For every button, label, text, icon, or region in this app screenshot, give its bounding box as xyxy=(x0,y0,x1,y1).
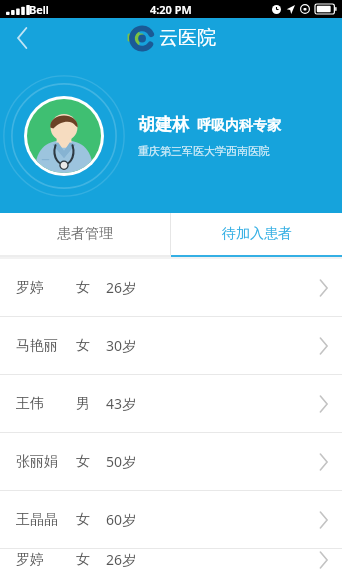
button[interactable]: 王伟 xyxy=(0,375,342,432)
staticText: 男 xyxy=(76,395,90,413)
button[interactable]: 马艳丽 xyxy=(0,317,342,374)
button[interactable]: 张丽娟 xyxy=(0,433,342,490)
button[interactable]: 罗婷 xyxy=(0,259,342,316)
staticText: 王晶晶 xyxy=(16,511,58,529)
staticText: 重庆第三军医大学西南医院 xyxy=(138,144,270,158)
button[interactable]: Doctor avatar xyxy=(27,99,101,173)
button[interactable]: 待加入患者 xyxy=(171,213,342,255)
staticText: 50岁 xyxy=(106,452,137,471)
staticText: 女 xyxy=(76,279,90,297)
button[interactable]: 罗婷 xyxy=(0,549,342,570)
staticText: 4:20 PM xyxy=(150,2,192,17)
staticText: 女 xyxy=(76,511,90,529)
staticText: 呼吸内科专家 xyxy=(197,117,281,135)
staticText: 60岁 xyxy=(106,510,137,529)
staticText: 女 xyxy=(76,453,90,471)
button[interactable]: 患者管理 xyxy=(0,213,170,255)
staticText: 待加入患者 xyxy=(222,225,292,243)
staticText: Bell xyxy=(29,2,49,17)
staticText: 云医院 xyxy=(159,26,216,50)
staticText: 张丽娟 xyxy=(16,453,58,471)
staticText: 女 xyxy=(76,551,90,569)
staticText: 女 xyxy=(76,337,90,355)
staticText: 26岁 xyxy=(106,278,137,297)
staticText: 罗婷 xyxy=(16,279,44,297)
staticText: 马艳丽 xyxy=(16,337,58,355)
staticText: 罗婷 xyxy=(16,551,44,569)
staticText: 43岁 xyxy=(106,394,137,413)
staticText: 王伟 xyxy=(16,395,44,413)
staticText: 胡建林 xyxy=(138,114,189,135)
staticText: 30岁 xyxy=(106,336,137,355)
button[interactable]: Back xyxy=(0,18,44,58)
staticText: 26岁 xyxy=(106,550,137,569)
button[interactable]: 王晶晶 xyxy=(0,491,342,548)
staticText: 患者管理 xyxy=(57,225,113,243)
